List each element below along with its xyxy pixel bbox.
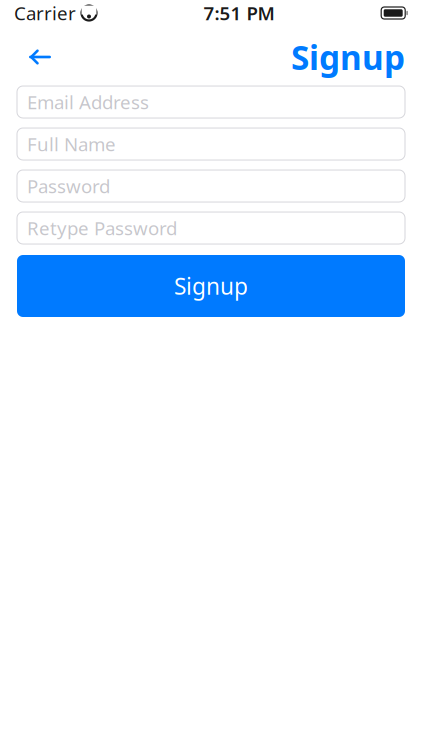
button[interactable]: Signup — [17, 255, 405, 317]
button[interactable]: Full Name — [17, 128, 405, 160]
staticText: 7:51 PM — [204, 1, 275, 25]
button[interactable]: Email Address — [17, 86, 405, 118]
button[interactable]: Back — [17, 39, 63, 75]
staticText: Password — [27, 174, 110, 198]
staticText: Retype Password — [27, 216, 177, 240]
staticText: Carrier — [14, 1, 76, 25]
button[interactable]: Retype Password — [17, 212, 405, 244]
staticText: Full Name — [27, 132, 116, 156]
staticText: Signup — [174, 271, 248, 301]
button[interactable]: Password — [17, 170, 405, 202]
staticText: Signup — [291, 35, 405, 79]
button[interactable]: Signup — [291, 35, 405, 79]
staticText: Email Address — [27, 90, 149, 114]
